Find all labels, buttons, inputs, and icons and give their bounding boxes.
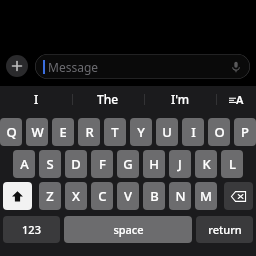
staticText: C [98, 187, 107, 205]
staticText: L [229, 155, 236, 173]
button[interactable]: L [221, 150, 243, 178]
button[interactable]: Text formatting [216, 86, 256, 112]
button[interactable]: T [104, 118, 126, 146]
button[interactable]: U [156, 118, 178, 146]
staticText: B [150, 187, 159, 205]
staticText: R [85, 123, 94, 141]
staticText: Y [137, 123, 145, 141]
button[interactable]: C [91, 182, 113, 210]
staticText: return [208, 222, 242, 237]
staticText: D [71, 155, 81, 173]
button[interactable]: N [169, 182, 191, 210]
staticText: Z [46, 187, 54, 205]
staticText: E [59, 123, 67, 141]
staticText: G [123, 155, 133, 173]
button[interactable]: S [39, 150, 61, 178]
staticText: S [46, 155, 54, 173]
staticText: I [191, 123, 196, 141]
button[interactable]: R [78, 118, 100, 146]
staticText: A [236, 92, 244, 107]
button[interactable]: I'm [144, 86, 216, 112]
button[interactable]: space [64, 216, 192, 243]
button[interactable]: 123 [3, 216, 60, 243]
staticText: U [162, 123, 172, 141]
button[interactable]: E [52, 118, 74, 146]
staticText: A [20, 155, 29, 173]
button[interactable]: A [13, 150, 35, 178]
button[interactable]: Dictate [229, 60, 243, 74]
staticText: F [99, 155, 106, 173]
staticText: K [202, 155, 211, 173]
button[interactable]: W [26, 118, 48, 146]
button[interactable]: J [169, 150, 191, 178]
staticText: V [124, 187, 132, 205]
staticText: I [34, 91, 39, 107]
staticText: M [200, 187, 212, 205]
button[interactable]: Backspace [224, 182, 253, 210]
staticText: O [214, 123, 225, 141]
staticText: I'm [171, 91, 190, 107]
button[interactable]: Add attachment [6, 55, 28, 77]
button[interactable]: F [91, 150, 113, 178]
button[interactable]: D [65, 150, 87, 178]
button[interactable]: Message [35, 54, 250, 79]
button[interactable]: X [65, 182, 87, 210]
staticText: J [178, 155, 182, 173]
button[interactable]: H [143, 150, 165, 178]
button[interactable]: M [195, 182, 217, 210]
button[interactable]: I [0, 86, 72, 112]
button[interactable]: I [182, 118, 204, 146]
button[interactable]: B [143, 182, 165, 210]
staticText: space [113, 222, 144, 237]
button[interactable]: The [72, 86, 144, 112]
staticText: Q [6, 123, 17, 141]
staticText: P [241, 123, 249, 141]
staticText: N [175, 187, 186, 205]
staticText: Message [48, 59, 99, 75]
staticText: X [72, 187, 80, 205]
button[interactable]: Y [130, 118, 152, 146]
staticText: T [111, 123, 119, 141]
button[interactable]: V [117, 182, 139, 210]
button[interactable]: O [208, 118, 230, 146]
button[interactable]: P [234, 118, 256, 146]
button[interactable]: Q [0, 118, 22, 146]
button[interactable]: G [117, 150, 139, 178]
staticText: H [149, 155, 159, 173]
button[interactable]: return [196, 216, 253, 243]
button[interactable]: Z [39, 182, 61, 210]
button[interactable]: Shift [3, 182, 32, 210]
staticText: W [31, 123, 44, 141]
button[interactable]: K [195, 150, 217, 178]
staticText: 123 [22, 222, 41, 237]
staticText: The [97, 91, 119, 107]
